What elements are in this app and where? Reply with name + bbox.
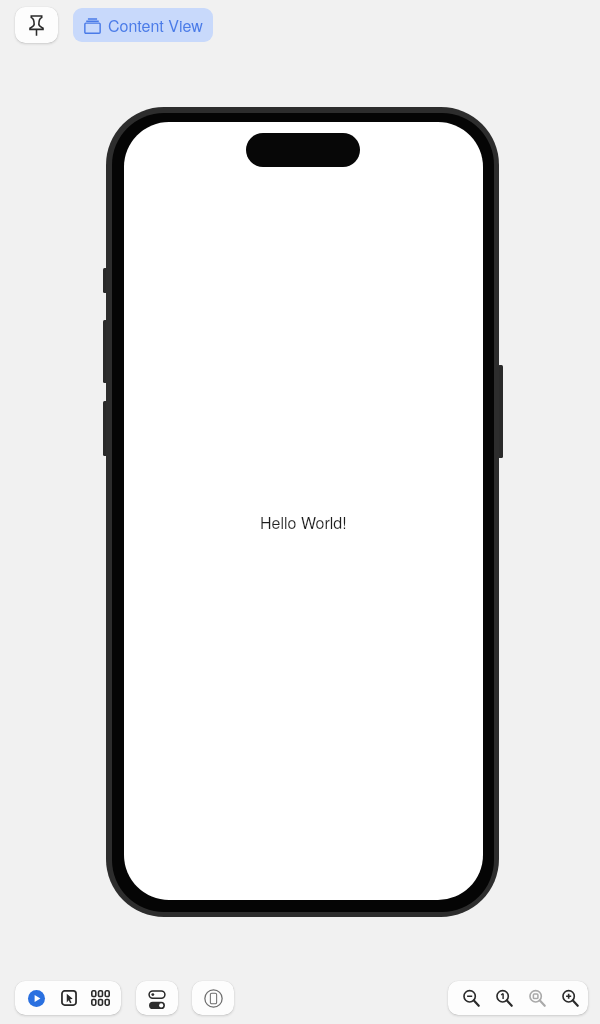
staticText: Hello World! <box>260 511 347 534</box>
button[interactable]: Select element <box>51 981 86 1015</box>
button[interactable]: Variants <box>83 981 118 1015</box>
button[interactable]: Run preview <box>19 981 54 1015</box>
button[interactable]: Preview settings <box>136 981 178 1015</box>
button[interactable]: Actual size <box>487 981 520 1015</box>
staticText: Content View <box>108 14 203 37</box>
button[interactable]: Zoom to fit <box>520 981 553 1015</box>
button[interactable]: Device settings <box>192 981 234 1015</box>
button[interactable]: Pin preview <box>15 7 58 43</box>
button[interactable]: Content View <box>73 8 213 42</box>
button[interactable]: Zoom out <box>454 981 487 1015</box>
button[interactable]: Zoom in <box>553 981 586 1015</box>
